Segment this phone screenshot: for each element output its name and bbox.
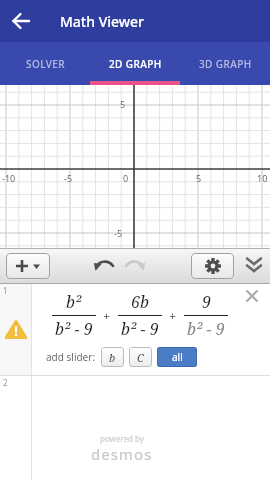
button[interactable] [6,253,50,279]
button[interactable] [5,320,27,340]
staticText: add slider: [46,350,101,364]
staticText: b² − 9 [187,318,225,340]
staticText: 5 [120,98,126,110]
staticText: b [109,350,116,365]
button[interactable] [242,286,262,306]
staticText: + [169,307,177,325]
staticText: 9 [202,291,211,313]
staticText: -10 [2,172,16,184]
button[interactable] [120,255,146,277]
staticText: + [103,307,111,325]
staticText: b² − 9 [55,318,93,340]
staticText: C [137,350,144,365]
button[interactable] [242,256,266,276]
button[interactable]: all [157,347,197,367]
button[interactable] [93,255,119,277]
button[interactable] [0,0,42,42]
button[interactable]: SOLVER [0,42,90,85]
staticText: SOLVER [26,57,65,71]
staticText: 5 [196,172,202,184]
button[interactable]: 3D GRAPH [180,42,270,85]
staticText: -5 [114,227,123,239]
button[interactable]: C [129,347,152,367]
staticText: powered by [100,433,144,444]
staticText: -5 [64,172,73,184]
button[interactable] [191,253,234,279]
staticText: 0 [123,172,129,184]
staticText: 2D GRAPH [109,57,162,71]
staticText: 2 [3,377,8,388]
staticText: Math Viewer [60,12,145,31]
staticText: 3D GRAPH [199,57,252,71]
staticText: b² [66,291,82,313]
staticText: desmos [91,444,153,464]
staticText: all [172,350,183,364]
button[interactable]: b [101,347,124,367]
staticText: 1 [3,285,8,296]
button[interactable]: 2D GRAPH [90,42,180,85]
staticText: 6b [131,291,149,313]
staticText: b² − 9 [121,318,159,340]
staticText: 10 [257,172,268,184]
